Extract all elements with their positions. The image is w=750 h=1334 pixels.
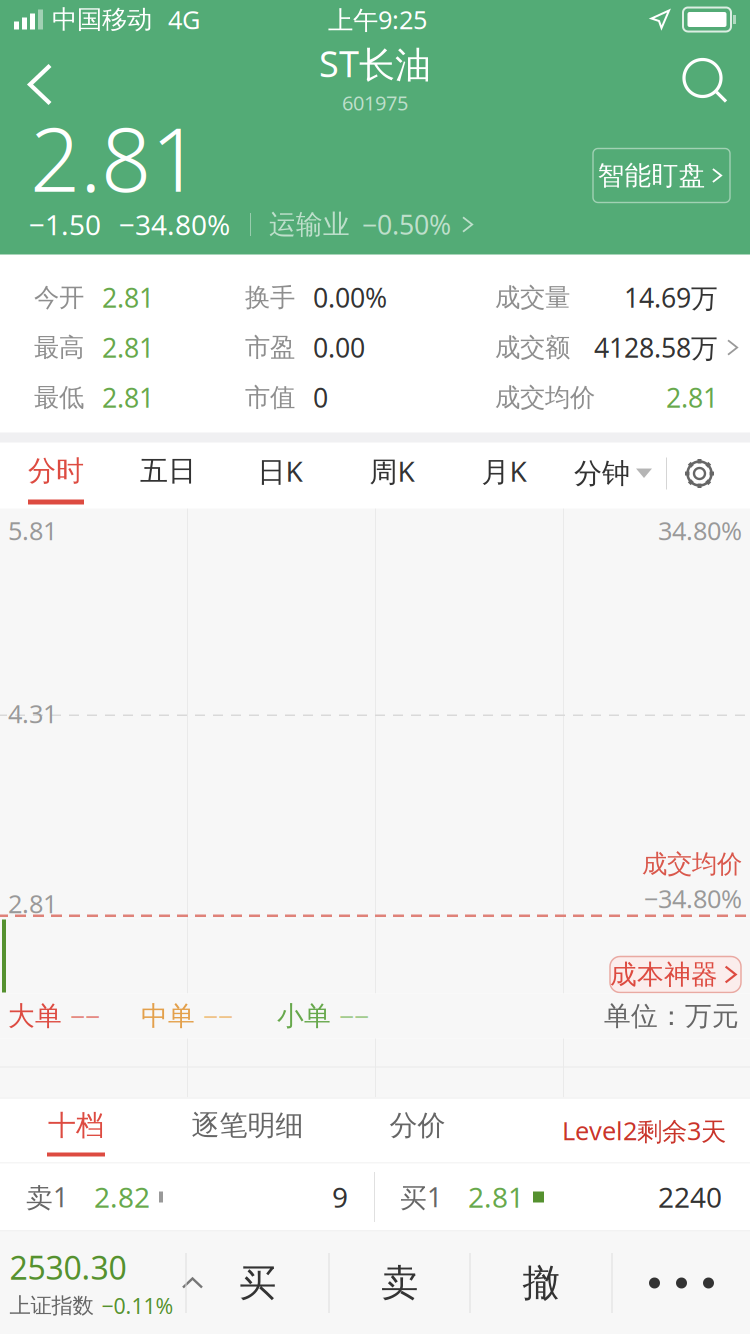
staticText: 2240 (658, 1178, 722, 1216)
staticText: 2.82 (94, 1178, 150, 1216)
button[interactable]: 分价 (343, 1098, 492, 1162)
staticText: 601975 (342, 89, 408, 116)
button[interactable]: 周K (336, 442, 448, 504)
staticText: 十档 (48, 1108, 104, 1143)
staticText: 大单 (8, 1000, 62, 1032)
staticText: 周K (369, 452, 414, 490)
staticText: 买1 (400, 1179, 442, 1215)
staticText: 成交均价 (642, 848, 742, 880)
button[interactable]: 十档 (0, 1098, 152, 1162)
staticText: 卖 (381, 1260, 418, 1306)
staticText: 中单 (141, 1000, 195, 1032)
staticText: 分时 (28, 454, 84, 488)
button[interactable]: 月K (448, 442, 560, 504)
button[interactable]: 撤 (470, 1231, 611, 1334)
staticText: 智能盯盘 (597, 159, 705, 192)
staticText: −34.80% (644, 882, 742, 915)
button[interactable]: Search (664, 41, 748, 121)
staticText: 上证指数 (9, 1293, 93, 1319)
staticText: 卖1 (26, 1179, 68, 1215)
staticText: 撤 (522, 1260, 559, 1306)
staticText: 4.31 (8, 696, 57, 730)
staticText: 成本神器 (610, 958, 718, 991)
button[interactable]: 分钟 (560, 442, 666, 504)
staticText: 单位：万元 (604, 1000, 739, 1032)
staticText: 4G (168, 3, 200, 36)
staticText: 0.00% (313, 280, 387, 315)
button[interactable]: 买 (186, 1231, 328, 1334)
button[interactable]: More (612, 1231, 750, 1334)
staticText: 2.81 (468, 1178, 524, 1216)
staticText: −− (339, 998, 369, 1034)
button[interactable]: 日K (224, 442, 336, 504)
button[interactable]: 五日 (112, 442, 224, 504)
staticText: 34.80% (658, 513, 742, 547)
button[interactable]: 2530.30 (0, 1231, 185, 1334)
staticText: 今开 (34, 282, 84, 313)
staticText: 换手 (245, 282, 295, 313)
staticText: 买 (239, 1260, 276, 1306)
staticText: −0.11% (101, 1292, 173, 1320)
staticText: 4128.58万 (594, 330, 718, 365)
staticText: 2.81 (102, 380, 154, 415)
staticText: 逐笔明细 (191, 1108, 303, 1143)
staticText: 分价 (389, 1108, 445, 1143)
staticText: −0.50% (362, 207, 451, 242)
staticText: 上午9:25 (328, 3, 427, 36)
staticText: 五日 (140, 454, 196, 488)
staticText: 小单 (277, 1000, 331, 1032)
staticText: 2.81 (102, 330, 154, 365)
staticText: −1.50 (29, 206, 101, 243)
staticText: −− (70, 998, 100, 1034)
staticText: Level2剩余3天 (562, 1114, 726, 1147)
staticText: 2530.30 (9, 1246, 126, 1289)
staticText: 2.81 (666, 380, 718, 415)
button[interactable]: Level2剩余3天 (538, 1098, 750, 1162)
staticText: 运输业 (269, 208, 350, 241)
staticText: −34.80% (119, 206, 230, 243)
staticText: 9 (332, 1178, 348, 1216)
staticText: 成交均价 (495, 382, 595, 413)
staticText: 2.81 (30, 99, 201, 216)
staticText: −− (203, 998, 233, 1034)
staticText: 日K (257, 452, 302, 490)
button[interactable]: Back (0, 44, 80, 124)
staticText: 14.69万 (624, 280, 718, 315)
staticText: 0.00 (313, 330, 365, 365)
staticText: 分钟 (574, 456, 630, 491)
button[interactable]: Chart settings (667, 442, 732, 504)
button[interactable]: 卖 (329, 1231, 469, 1334)
button[interactable]: 分时 (0, 442, 112, 504)
button[interactable]: 逐笔明细 (152, 1098, 343, 1162)
staticText: 5.81 (8, 513, 57, 547)
staticText: 中国移动 (52, 4, 152, 35)
button[interactable]: 成本神器 (610, 956, 741, 992)
staticText: 月K (481, 452, 526, 490)
staticText: 市盈 (245, 332, 295, 363)
button[interactable]: 智能盯盘 (593, 148, 730, 202)
staticText: ST长油 (319, 39, 431, 87)
staticText: 最高 (34, 332, 84, 363)
staticText: 2.81 (8, 886, 57, 920)
staticText: 最低 (34, 382, 84, 413)
staticText: 市值 (245, 382, 295, 413)
staticText: 成交量 (495, 282, 570, 313)
staticText: 2.81 (102, 280, 154, 315)
staticText: 0 (313, 380, 328, 415)
staticText: 成交额 (495, 332, 570, 363)
